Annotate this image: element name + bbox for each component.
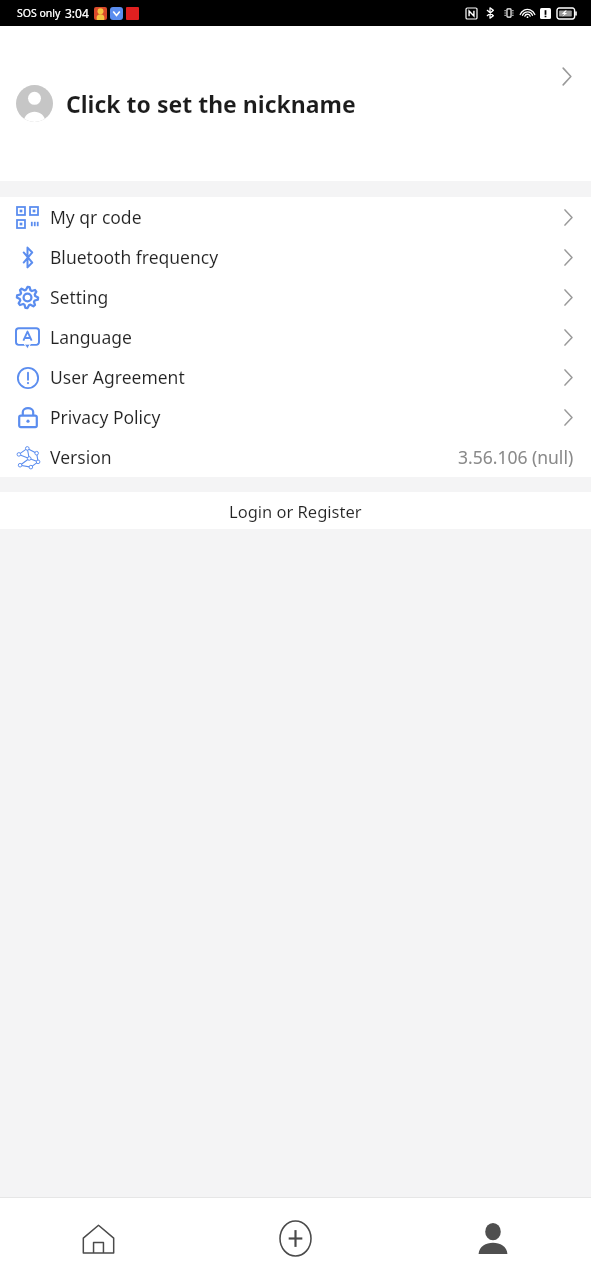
staticText: Language: [50, 325, 132, 349]
staticText: My qr code: [50, 205, 142, 229]
button[interactable]: Profile: [394, 1197, 591, 1280]
button[interactable]: My qr code: [0, 197, 591, 237]
staticText: Bluetooth frequency: [50, 245, 219, 269]
staticText: Privacy Policy: [50, 405, 161, 429]
button[interactable]: Bluetooth frequency: [0, 237, 591, 277]
staticText: SOS only: [17, 6, 61, 20]
staticText: 3:04: [65, 5, 89, 21]
button[interactable]: Login or Register: [0, 492, 591, 529]
button[interactable]: User Agreement: [0, 357, 591, 397]
button[interactable]: Privacy Policy: [0, 397, 591, 437]
button[interactable]: Language: [0, 317, 591, 357]
staticText: Version: [50, 445, 112, 469]
staticText: Click to set the nickname: [66, 88, 553, 119]
staticText: User Agreement: [50, 365, 185, 389]
button[interactable]: Click to set the nickname: [0, 26, 591, 181]
button[interactable]: Version: [0, 437, 591, 477]
staticText: 3.56.106 (null): [458, 445, 574, 469]
button[interactable]: Setting: [0, 277, 591, 317]
button[interactable]: Add: [197, 1197, 394, 1280]
button[interactable]: Home: [0, 1197, 197, 1280]
staticText: Setting: [50, 285, 109, 309]
staticText: Login or Register: [229, 500, 362, 522]
